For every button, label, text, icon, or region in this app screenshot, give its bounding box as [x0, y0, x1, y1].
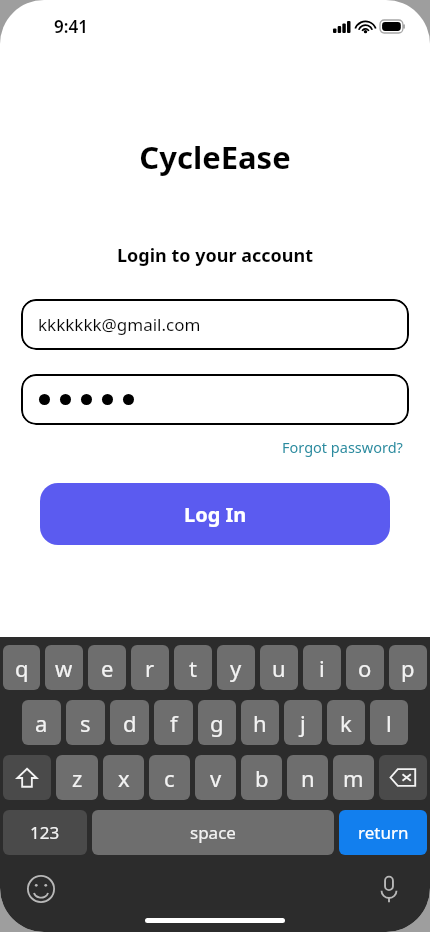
staticText: Login to your account: [117, 243, 313, 268]
button[interactable]: g: [198, 700, 236, 745]
button[interactable]: Emoji: [24, 872, 58, 906]
button[interactable]: m: [333, 755, 374, 800]
button[interactable]: o: [346, 645, 384, 690]
staticText: n: [301, 763, 315, 793]
staticText: g: [210, 708, 224, 738]
button[interactable]: q: [3, 645, 40, 690]
staticText: j: [300, 708, 306, 738]
staticText: m: [343, 763, 364, 793]
staticText: f: [170, 708, 178, 738]
staticText: e: [101, 653, 114, 683]
button[interactable]: space: [92, 810, 334, 855]
button[interactable]: 123: [3, 810, 87, 855]
button[interactable]: s: [66, 700, 105, 745]
button[interactable]: Dictation: [372, 872, 406, 906]
button[interactable]: e: [88, 645, 126, 690]
button[interactable]: Password field: [21, 374, 409, 425]
button[interactable]: c: [149, 755, 190, 800]
button[interactable]: l: [370, 700, 408, 745]
staticText: d: [123, 708, 137, 738]
button[interactable]: Delete: [379, 755, 427, 800]
staticText: Forgot password?: [282, 437, 403, 457]
staticText: c: [164, 763, 175, 793]
button[interactable]: Shift: [3, 755, 51, 800]
staticText: h: [253, 708, 267, 738]
staticText: t: [189, 653, 197, 683]
button[interactable]: z: [56, 755, 98, 800]
staticText: CycleEase: [139, 136, 291, 178]
staticText: w: [55, 653, 73, 683]
button[interactable]: x: [103, 755, 144, 800]
staticText: k: [340, 708, 352, 738]
staticText: kkkkkkk@gmail.com: [38, 313, 201, 336]
button[interactable]: p: [389, 645, 427, 690]
staticText: Log In: [184, 501, 247, 528]
button[interactable]: d: [110, 700, 149, 745]
staticText: l: [386, 708, 392, 738]
button[interactable]: r: [131, 645, 169, 690]
staticText: q: [15, 653, 29, 683]
staticText: a: [35, 708, 48, 738]
staticText: o: [358, 653, 372, 683]
button[interactable]: f: [154, 700, 193, 745]
button[interactable]: b: [241, 755, 282, 800]
button[interactable]: Log In: [40, 483, 390, 545]
button[interactable]: u: [260, 645, 298, 690]
button[interactable]: t: [174, 645, 212, 690]
staticText: s: [80, 708, 91, 738]
button[interactable]: y: [217, 645, 255, 690]
staticText: r: [145, 653, 155, 683]
staticText: v: [210, 763, 222, 793]
staticText: i: [319, 653, 325, 683]
staticText: p: [401, 653, 415, 683]
button[interactable]: i: [303, 645, 341, 690]
button[interactable]: return: [339, 810, 427, 855]
button[interactable]: n: [287, 755, 328, 800]
staticText: space: [190, 821, 236, 844]
button[interactable]: kkkkkkk@gmail.com: [21, 299, 409, 350]
button[interactable]: k: [327, 700, 365, 745]
button[interactable]: v: [195, 755, 236, 800]
staticText: z: [72, 763, 83, 793]
button[interactable]: Forgot password?: [282, 437, 403, 457]
staticText: 123: [30, 821, 60, 844]
staticText: return: [358, 821, 409, 844]
staticText: y: [230, 653, 242, 683]
staticText: 9:41: [54, 15, 88, 38]
staticText: b: [255, 763, 269, 793]
button[interactable]: j: [284, 700, 322, 745]
button[interactable]: h: [241, 700, 279, 745]
staticText: x: [118, 763, 130, 793]
button[interactable]: w: [45, 645, 83, 690]
staticText: u: [272, 653, 286, 683]
button[interactable]: a: [22, 700, 61, 745]
